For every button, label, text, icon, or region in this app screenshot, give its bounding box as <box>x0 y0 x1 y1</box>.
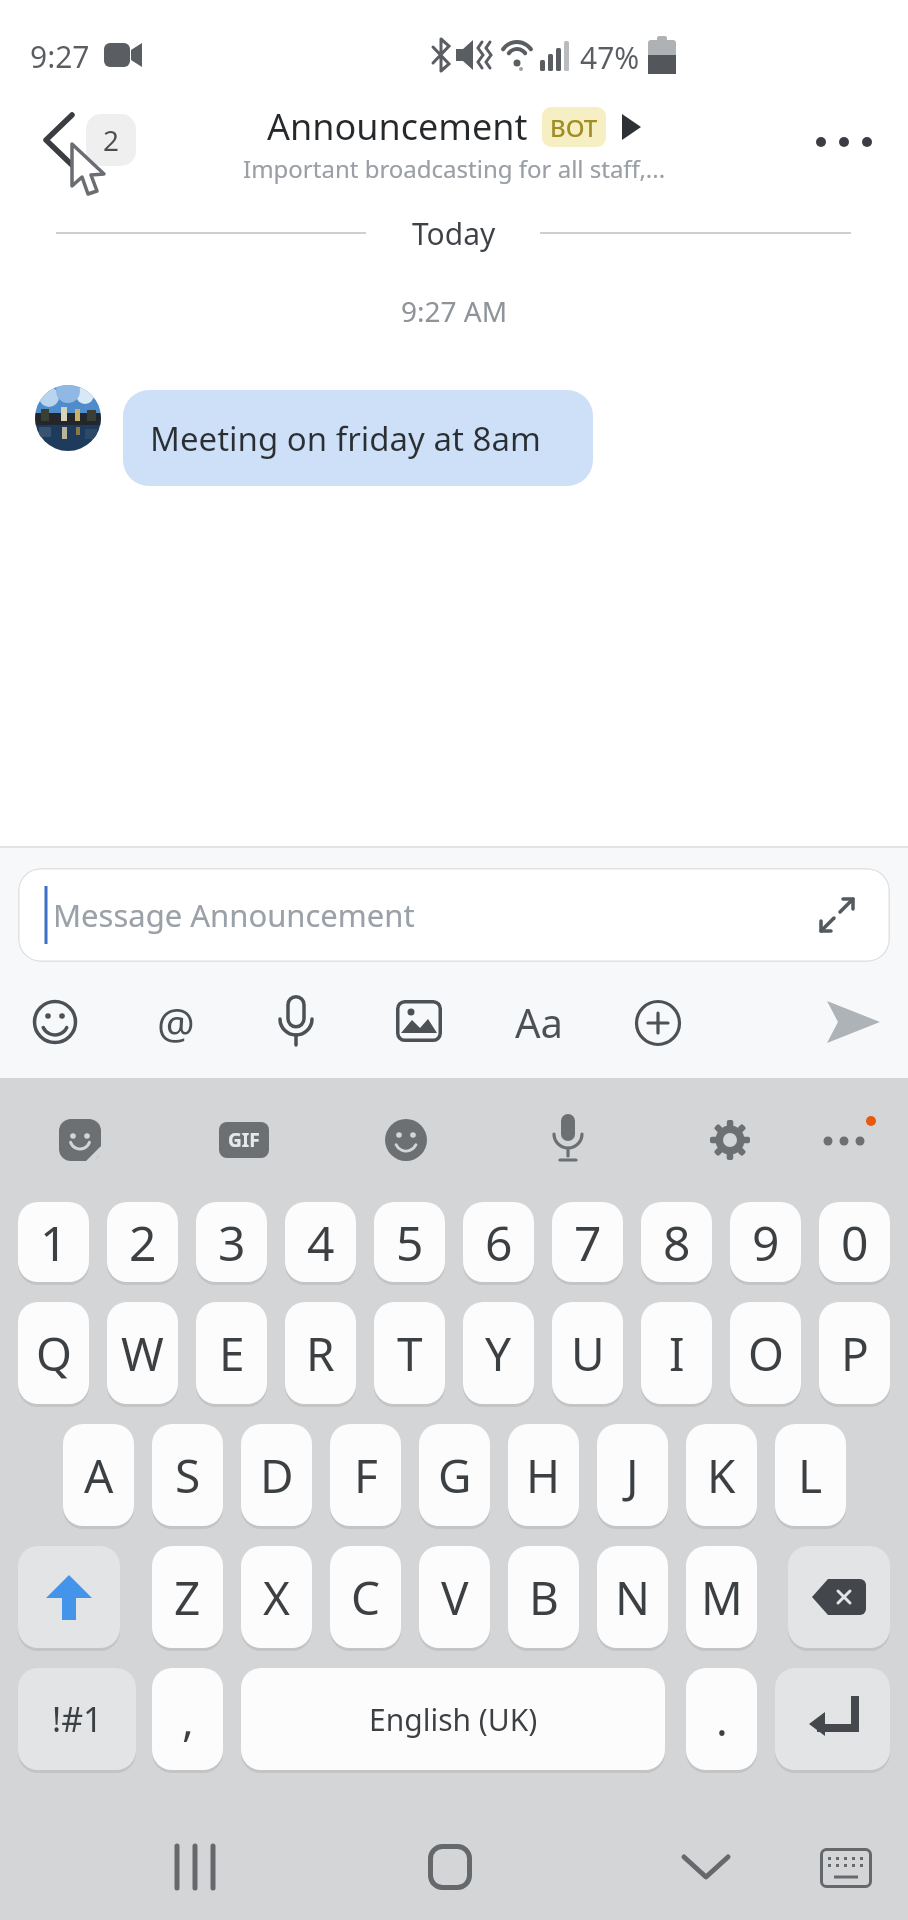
button[interactable] <box>18 1546 120 1648</box>
button[interactable]: H <box>508 1424 579 1526</box>
button[interactable] <box>788 1546 890 1648</box>
staticText: Z <box>174 1566 201 1629</box>
button[interactable] <box>274 995 318 1051</box>
staticText: M <box>701 1566 743 1629</box>
button[interactable]: English (UK) <box>241 1668 665 1770</box>
staticText: 9 <box>752 1210 780 1275</box>
button[interactable]: 1 <box>18 1202 89 1282</box>
button[interactable] <box>826 1000 882 1044</box>
button[interactable] <box>32 999 78 1045</box>
staticText: P <box>841 1322 869 1385</box>
button[interactable]: 6 <box>463 1202 534 1282</box>
button[interactable]: S <box>152 1424 223 1526</box>
staticText: F <box>354 1444 378 1507</box>
button[interactable]: GIF <box>219 1122 269 1158</box>
staticText: B <box>529 1566 559 1629</box>
button[interactable] <box>428 1844 472 1890</box>
button[interactable] <box>548 1112 588 1166</box>
staticText: BOT <box>550 111 598 144</box>
staticText: 6 <box>485 1210 513 1275</box>
staticText: . <box>716 1689 728 1749</box>
button[interactable]: 2 <box>107 1202 178 1282</box>
button[interactable]: F <box>330 1424 401 1526</box>
staticText: G <box>438 1444 472 1507</box>
button[interactable]: M <box>686 1546 757 1648</box>
staticText: 9:27 <box>30 36 90 77</box>
button[interactable] <box>816 1112 880 1168</box>
button[interactable]: I <box>641 1302 712 1404</box>
staticText: K <box>707 1444 736 1507</box>
button[interactable] <box>24 100 148 176</box>
staticText: 7 <box>574 1210 602 1275</box>
button[interactable] <box>775 1668 890 1770</box>
button[interactable]: N <box>597 1546 668 1648</box>
button[interactable]: Message Announcement <box>18 868 890 962</box>
button[interactable]: , <box>152 1668 223 1770</box>
button[interactable]: 7 <box>552 1202 623 1282</box>
button[interactable]: 5 <box>374 1202 445 1282</box>
button[interactable]: @ <box>150 992 202 1052</box>
button[interactable]: P <box>819 1302 890 1404</box>
staticText: 2 <box>129 1210 157 1275</box>
button[interactable]: 9 <box>730 1202 801 1282</box>
staticText: O <box>748 1322 784 1385</box>
button[interactable]: V <box>419 1546 490 1648</box>
button[interactable] <box>172 1844 218 1890</box>
staticText: Q <box>36 1322 72 1385</box>
button[interactable] <box>634 999 682 1047</box>
button[interactable]: U <box>552 1302 623 1404</box>
button[interactable] <box>682 1855 730 1881</box>
button[interactable]: Aa <box>508 992 570 1052</box>
staticText: E <box>219 1322 245 1385</box>
button[interactable]: Q <box>18 1302 89 1404</box>
staticText: Meeting on friday at 8am <box>150 416 541 461</box>
button[interactable]: X <box>241 1546 312 1648</box>
button[interactable]: 4 <box>285 1202 356 1282</box>
button[interactable]: W <box>107 1302 178 1404</box>
staticText: Message Announcement <box>53 894 415 936</box>
staticText: English (UK) <box>369 1699 538 1740</box>
staticText: 2 <box>103 121 120 159</box>
button[interactable] <box>820 1848 872 1888</box>
staticText: GIF <box>228 1127 260 1153</box>
staticText: R <box>306 1322 335 1385</box>
button[interactable]: !#1 <box>18 1668 136 1770</box>
button[interactable]: T <box>374 1302 445 1404</box>
button[interactable]: L <box>775 1424 846 1526</box>
button[interactable]: . <box>686 1668 757 1770</box>
button[interactable]: A <box>63 1424 134 1526</box>
staticText: U <box>571 1322 605 1385</box>
button[interactable]: C <box>330 1546 401 1648</box>
button[interactable]: O <box>730 1302 801 1404</box>
button[interactable]: G <box>419 1424 490 1526</box>
button[interactable]: J <box>597 1424 668 1526</box>
button[interactable] <box>384 1118 428 1162</box>
staticText: 47% <box>580 37 640 78</box>
staticText: Important broadcasting for all staff,... <box>243 152 666 185</box>
button[interactable]: Meeting on friday at 8am <box>123 390 593 486</box>
button[interactable]: B <box>508 1546 579 1648</box>
staticText: X <box>263 1566 290 1629</box>
button[interactable]: Z <box>152 1546 223 1648</box>
button[interactable] <box>800 112 888 172</box>
staticText: Y <box>485 1322 512 1385</box>
button[interactable]: 0 <box>819 1202 890 1282</box>
staticText: Today <box>412 213 496 254</box>
button[interactable]: R <box>285 1302 356 1404</box>
button[interactable]: 3 <box>196 1202 267 1282</box>
button[interactable]: Y <box>463 1302 534 1404</box>
staticText: A <box>84 1444 114 1507</box>
button[interactable] <box>396 1000 442 1042</box>
staticText: C <box>351 1566 381 1629</box>
button[interactable]: E <box>196 1302 267 1404</box>
button[interactable]: D <box>241 1424 312 1526</box>
staticText: 3 <box>218 1210 246 1275</box>
staticText: @ <box>157 994 195 1051</box>
button[interactable]: K <box>686 1424 757 1526</box>
button[interactable]: 8 <box>641 1202 712 1282</box>
button[interactable] <box>708 1118 752 1162</box>
staticText: J <box>626 1444 639 1507</box>
staticText: 1 <box>40 1210 68 1275</box>
staticText: S <box>175 1444 201 1507</box>
button[interactable] <box>58 1118 102 1162</box>
